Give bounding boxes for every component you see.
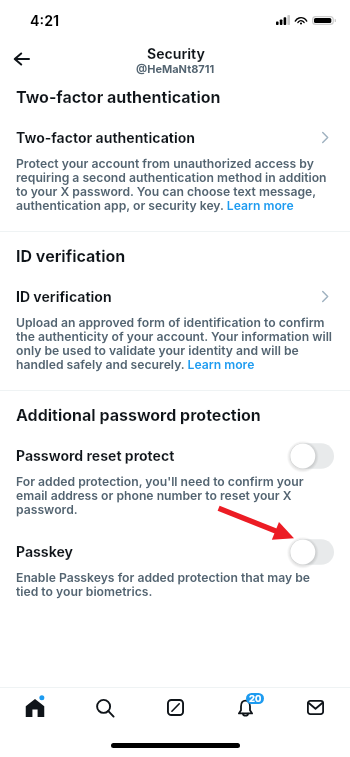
button[interactable]: ID verification	[16, 288, 334, 305]
button[interactable]: Home	[0, 688, 70, 727]
staticText: 4:21	[30, 12, 59, 29]
button[interactable]: Password reset protect	[16, 447, 334, 464]
staticText: Password reset protect	[16, 447, 175, 464]
button[interactable]: Search	[70, 688, 140, 727]
staticText: ID verification	[16, 288, 322, 305]
button[interactable]: Messages	[280, 688, 350, 727]
staticText: Two-factor authentication	[16, 87, 221, 106]
staticText: Two-factor authentication	[16, 129, 322, 146]
staticText: Passkey	[16, 543, 74, 560]
button[interactable]: Notifications	[210, 688, 280, 727]
button[interactable]: Passkey	[16, 543, 334, 560]
button[interactable]: Two-factor authentication	[16, 129, 334, 146]
staticText: ID verification	[16, 246, 126, 265]
staticText: @HeMaNt8711	[136, 62, 215, 75]
staticText: Protect your account from unauthorized a…	[16, 157, 334, 213]
staticText: Upload an approved form of identificatio…	[16, 316, 334, 372]
staticText: Additional password protection	[16, 405, 261, 424]
staticText: For added protection, you'll need to con…	[16, 475, 334, 517]
button[interactable]: Grok	[140, 688, 210, 727]
staticText: Security	[147, 45, 205, 62]
staticText: Enable Passkeys for added protection tha…	[16, 571, 334, 599]
staticText: 20	[249, 693, 262, 704]
button[interactable]: Back	[4, 42, 38, 76]
